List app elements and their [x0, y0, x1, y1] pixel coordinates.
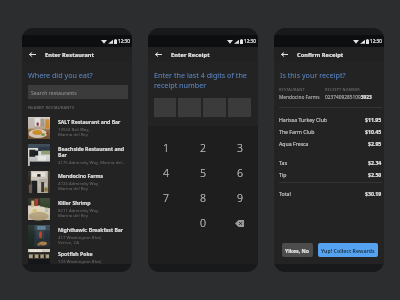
staticText: Beachside Restaurant and Bar — [58, 145, 128, 158]
staticText: NEARBY RESTAURANTS — [28, 105, 75, 110]
staticText: Yup! Collect Rewards — [321, 247, 375, 254]
button[interactable]: Back — [279, 49, 290, 60]
button[interactable]: Yup! Collect Rewards — [318, 243, 378, 257]
staticText: The Farm Club — [279, 128, 315, 135]
button[interactable]: Nighthawk: Breakfast Bar — [22, 222, 132, 249]
staticText: 8211 Admiralty Way, Marina del Rey — [58, 207, 100, 218]
staticText: 4 — [163, 166, 169, 180]
staticText: Tax — [279, 159, 288, 166]
staticText: $2.34 — [368, 159, 382, 166]
staticText: $10.45 — [365, 128, 382, 135]
staticText: Enter the last 4 digits of the receipt n… — [154, 70, 255, 90]
staticText: Killer Shrimp — [58, 199, 91, 206]
staticText: RECEIPT NUMBER — [325, 87, 360, 92]
button[interactable]: SALT Restaurant and Bar — [22, 114, 132, 141]
staticText: 4175 Admiralty Way, Marina del... — [58, 159, 126, 165]
button[interactable]: 4 — [148, 160, 184, 185]
staticText: Mendocino Farms — [58, 172, 104, 179]
button[interactable]: Beachside Restaurant and Bar — [22, 141, 132, 168]
button[interactable]: Killer Shrimp — [22, 195, 132, 222]
staticText: Is this your receipt? — [280, 70, 346, 80]
button[interactable]: 3 — [221, 135, 258, 160]
staticText: Confirm Receipt — [297, 51, 344, 59]
staticText: 02374092851093923 — [325, 94, 372, 101]
staticText: 1 — [163, 141, 169, 155]
staticText: Search restaurants — [31, 89, 77, 96]
button[interactable]: 0 — [184, 210, 221, 236]
staticText: Enter Restaurant — [45, 51, 95, 59]
staticText: Aqua Fresca — [279, 140, 309, 147]
staticText: 9 — [237, 191, 243, 205]
staticText: Harissa Turkey Club — [279, 116, 328, 123]
button[interactable]: Back — [153, 49, 164, 60]
staticText: Total — [279, 190, 291, 197]
staticText: RESTAURANT — [279, 87, 305, 92]
staticText: SALT Restaurant and Bar — [58, 118, 121, 125]
staticText: $30.19 — [365, 190, 382, 197]
staticText: 12:30 — [118, 38, 130, 44]
button[interactable]: 1 — [148, 135, 184, 160]
staticText: 4724 Admiralty Way, Marina del Rey — [58, 180, 100, 191]
staticText: $11.95 — [365, 116, 382, 123]
staticText: $2.95 — [368, 140, 382, 147]
button[interactable]: 2 — [184, 135, 221, 160]
staticText: 5 — [200, 166, 206, 180]
staticText: 417 Washington Blvd, Venice, CA — [58, 234, 102, 245]
button[interactable]: Yikes, No — [282, 243, 313, 257]
staticText: 3 — [237, 141, 243, 155]
button[interactable]: 5 — [184, 160, 221, 185]
button[interactable]: Search restaurants — [28, 85, 128, 99]
button[interactable]: 8 — [184, 185, 221, 210]
staticText: 13534 Bali Way, Marina del Rey — [58, 126, 90, 137]
staticText: 12:30 — [244, 38, 256, 44]
staticText: $2.50 — [368, 171, 382, 178]
button[interactable]: Mendocino Farms — [22, 168, 132, 195]
staticText: Spotfish Poke — [58, 250, 93, 257]
staticText: 2 — [200, 141, 206, 155]
button[interactable]: Backspace — [221, 210, 258, 236]
staticText: 7 — [163, 191, 169, 205]
staticText: Where did you eat? — [28, 70, 93, 80]
staticText: Nighthawk: Breakfast Bar — [58, 226, 124, 233]
button[interactable]: 7 — [148, 185, 184, 210]
button[interactable]: 6 — [221, 160, 258, 185]
staticText: 0 — [200, 216, 206, 230]
staticText: 12:30 — [370, 38, 382, 44]
staticText: 8 — [200, 191, 206, 205]
staticText: Mendocino Farms — [279, 94, 320, 101]
staticText: 133 Washington Blvd, — [58, 258, 102, 264]
staticText: 6 — [237, 166, 243, 180]
button[interactable]: 9 — [221, 185, 258, 210]
staticText: Tip — [279, 171, 287, 178]
staticText: Yikes, No — [285, 247, 310, 254]
button[interactable]: Back — [27, 49, 38, 60]
staticText: Enter Receipt — [171, 51, 210, 59]
button[interactable]: Spotfish Poke — [22, 249, 132, 264]
